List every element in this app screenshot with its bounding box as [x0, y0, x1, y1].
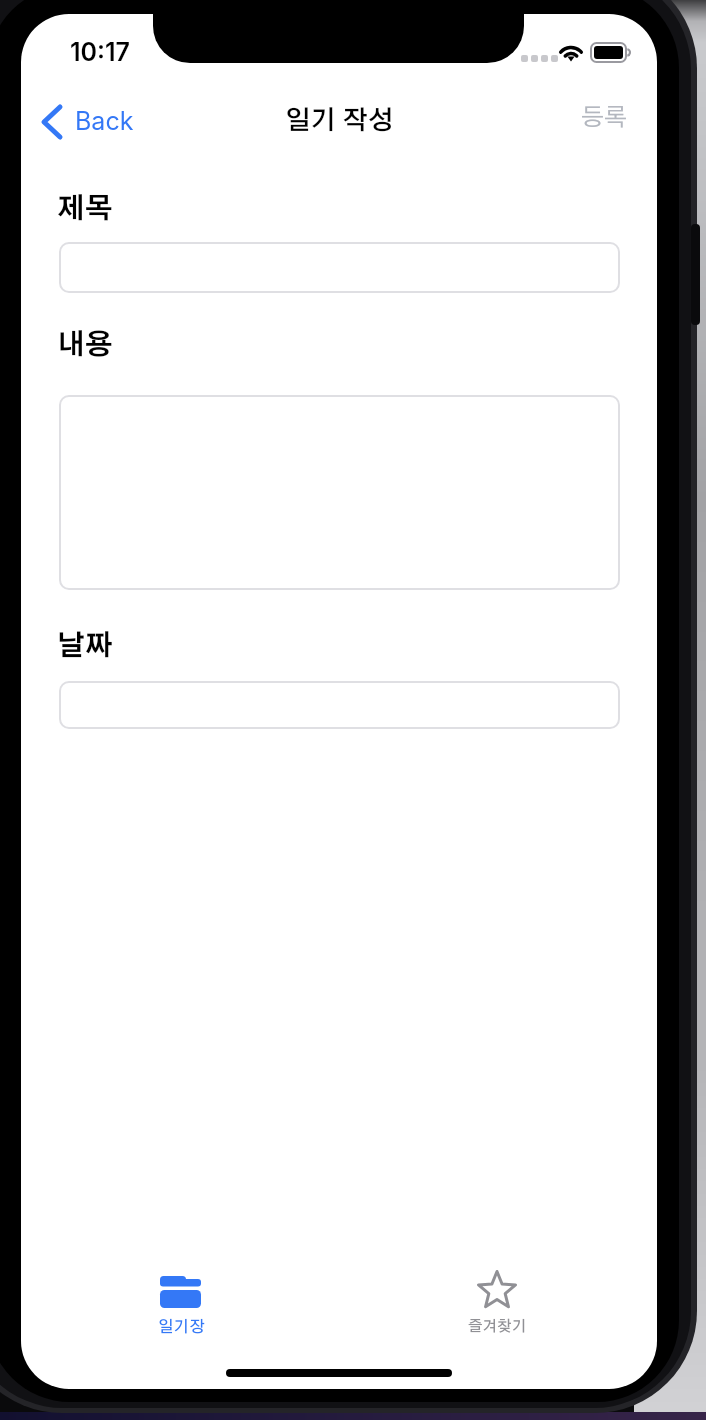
button[interactable] [59, 242, 620, 293]
staticText: 내용 [57, 332, 113, 360]
staticText: 날짜 [57, 633, 113, 661]
staticText: 일기 작성 [285, 108, 394, 134]
button[interactable]: 즐겨찾기 [457, 1266, 537, 1342]
staticText: 10:17 [70, 37, 131, 67]
staticText: 즐겨찾기 [468, 1319, 527, 1334]
button[interactable] [59, 395, 620, 590]
staticText: Back [75, 106, 134, 136]
button[interactable]: Back [36, 100, 136, 142]
button[interactable]: 일기장 [141, 1266, 221, 1342]
button[interactable] [59, 681, 620, 729]
staticText: 제목 [57, 196, 113, 224]
staticText: 일기장 [158, 1319, 205, 1335]
button[interactable]: 등록 [567, 98, 639, 140]
staticText: 등록 [581, 106, 628, 130]
